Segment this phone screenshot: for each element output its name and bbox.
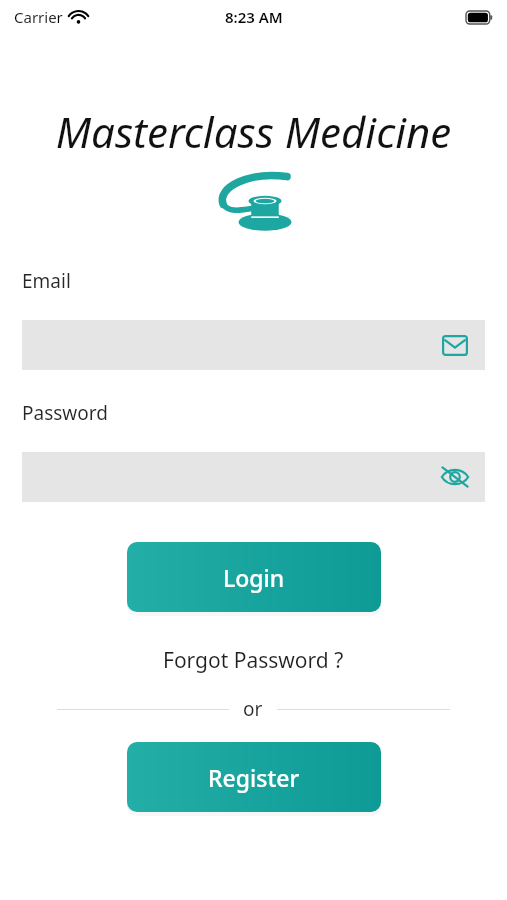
staticText: Forgot Password ? [163,646,344,675]
button[interactable]: Email [22,320,485,370]
staticText: 8:23 AM [225,7,283,27]
staticText: Register [208,762,300,793]
button[interactable]: Login [127,542,381,612]
staticText: Login [223,562,285,593]
button[interactable]: Show password [439,461,471,493]
button[interactable]: Email [439,329,471,361]
staticText: Carrier [14,7,63,27]
staticText: Masterclass Medicine [0,103,507,160]
staticText: or [243,696,263,722]
button[interactable]: Show password [22,452,485,502]
button[interactable]: Register [127,742,381,812]
staticText: Password [22,400,108,426]
staticText: Email [22,268,71,294]
button[interactable]: Forgot Password ? [153,643,354,678]
